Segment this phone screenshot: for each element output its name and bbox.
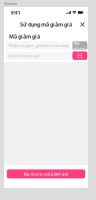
button[interactable]: Áp dụng [72,41,87,50]
staticText: Sử dụng mã giảm giá [20,21,72,28]
button[interactable]: Scan discount code [72,51,87,60]
staticText: Quét mã giảm giá [8,53,39,58]
staticText: Voucher [4,1,18,6]
button[interactable]: Close [78,20,86,28]
staticText: Mã giảm giá [9,33,40,40]
staticText: 9:41 [10,9,20,16]
button[interactable]: Áp dụng mã giảm giá [7,169,85,178]
staticText: Áp dụng [74,40,86,51]
staticText: Áp dụng mã giảm giá [24,171,68,176]
staticText: Nhập mã giảm giá/phiếu mua hàng [8,43,68,48]
